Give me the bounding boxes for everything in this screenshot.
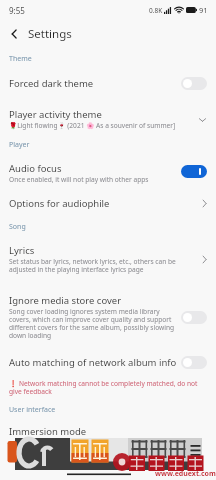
- staticText: Immersion mode: [9, 425, 87, 438]
- staticText: Player activity theme: [9, 108, 102, 121]
- button[interactable]: [181, 165, 207, 178]
- staticText: Theme: [9, 54, 32, 64]
- button[interactable]: [181, 311, 207, 324]
- staticText: User interface: [9, 405, 56, 415]
- staticText: Options for audiophile: [9, 197, 110, 210]
- button[interactable]: [181, 356, 207, 369]
- button[interactable]: [181, 77, 207, 90]
- button[interactable]: Options for audiophile: [0, 194, 216, 212]
- button[interactable]: Auto matching of network album info: [0, 353, 216, 371]
- staticText: Song: [9, 222, 26, 232]
- staticText: Song cover loading ignores system media …: [9, 307, 175, 340]
- staticText: 0.8K: [149, 6, 163, 15]
- button[interactable]: Audio focus: [0, 162, 216, 184]
- button[interactable]: Ignore media store cover: [0, 294, 216, 340]
- button[interactable]: Forced dark theme: [0, 73, 216, 93]
- staticText: Lyrics: [9, 244, 35, 257]
- staticText: Once enabled, it will not play with othe…: [9, 175, 149, 184]
- staticText: ❗ Network matching cannot be completely …: [9, 379, 210, 396]
- staticText: Settings: [28, 26, 72, 42]
- button[interactable]: Player activity theme: [0, 108, 216, 130]
- staticText: 🌹Light flowing🍷 (2021 🌸 As a souvenir of…: [9, 121, 176, 130]
- staticText: Player: [9, 140, 30, 150]
- staticText: Audio focus: [9, 162, 62, 175]
- staticText: 91: [199, 5, 208, 15]
- staticText: 9:55: [9, 5, 25, 16]
- staticText: www.eduext.com: [155, 469, 216, 479]
- button[interactable]: Lyrics: [0, 244, 216, 274]
- staticText: Auto matching of network album info: [9, 356, 177, 369]
- staticText: Set status bar lyrics, network lyrics, e…: [9, 257, 197, 274]
- staticText: Ignore media store cover: [9, 294, 122, 307]
- staticText: Forced dark theme: [9, 77, 94, 90]
- button[interactable]: Back: [7, 27, 21, 41]
